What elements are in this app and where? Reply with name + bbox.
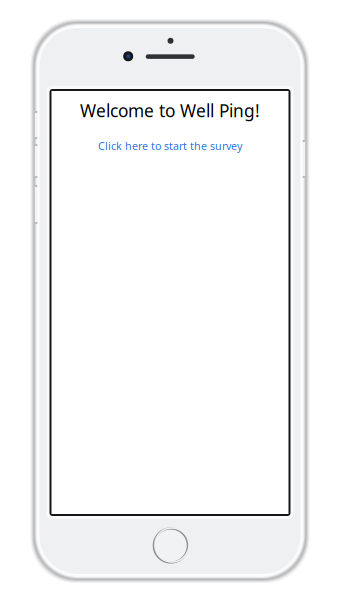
button[interactable]: Home — [149, 523, 193, 567]
button[interactable]: Click here to start the survey — [98, 139, 242, 153]
staticText: Welcome to Well Ping! — [80, 99, 260, 122]
staticText: Click here to start the survey — [98, 139, 242, 153]
